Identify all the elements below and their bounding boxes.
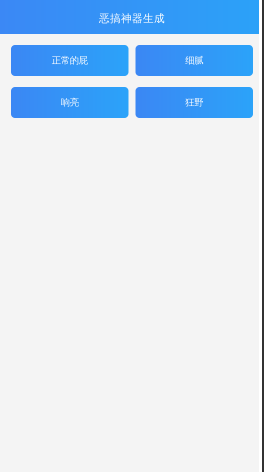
staticText: 狂野 xyxy=(185,97,203,108)
staticText: 正常的屁 xyxy=(52,55,88,66)
button[interactable]: 响亮 xyxy=(11,87,128,118)
staticText: 恶搞神器生成 xyxy=(99,12,165,25)
staticText: 响亮 xyxy=(61,97,79,108)
button[interactable]: 细腻 xyxy=(135,45,253,76)
button[interactable]: 狂野 xyxy=(135,87,253,118)
button[interactable]: 正常的屁 xyxy=(11,45,128,76)
staticText: 细腻 xyxy=(185,55,203,66)
